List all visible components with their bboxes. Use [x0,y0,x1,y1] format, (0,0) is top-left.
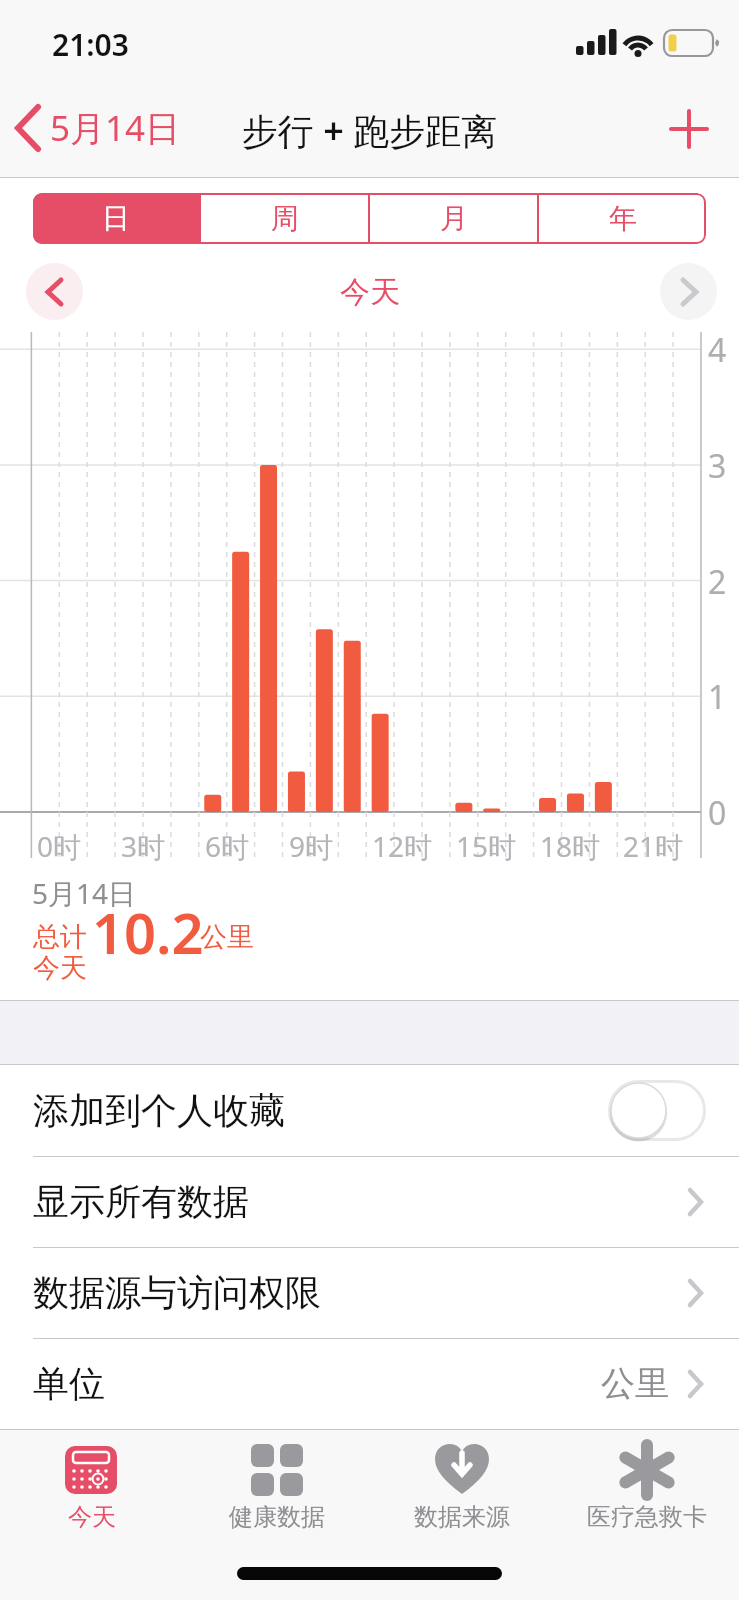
button[interactable]: 健康数据 [207,1444,347,1570]
button[interactable]: 显示所有数据 [0,1156,739,1247]
button[interactable]: 今天 [340,273,400,311]
button[interactable]: 数据来源 [392,1444,532,1570]
button[interactable]: 日 [33,193,199,244]
staticText: 15时 [456,827,517,865]
staticText: 数据来源 [414,1502,510,1532]
staticText: 3时 [121,827,166,865]
staticText: 6时 [205,827,250,865]
button[interactable]: 单位 [0,1338,739,1429]
staticText: 9时 [289,827,334,865]
button[interactable]: 数据源与访问权限 [0,1247,739,1338]
button[interactable]: 年 [539,193,706,244]
staticText: 添加到个人收藏 [33,1088,285,1133]
staticText: 0时 [37,827,82,865]
button[interactable]: 添加到个人收藏 [0,1065,739,1156]
staticText: 3 [708,444,727,488]
button[interactable] [26,263,83,320]
staticText: 日 [102,201,130,236]
button[interactable]: 5月14日 [14,100,181,156]
staticText: 21时 [623,827,684,865]
staticText: 显示所有数据 [33,1179,249,1224]
staticText: 今天 [33,951,87,985]
button[interactable]: 医疗急救卡 [577,1444,717,1570]
staticText: 21:03 [52,24,129,65]
button[interactable] [660,263,717,320]
button[interactable]: 月 [370,193,537,244]
staticText: 年 [609,201,637,236]
staticText: 步行 + 跑步距离 [0,106,739,155]
staticText: 5月14日 [50,104,181,152]
staticText: 0 [708,791,727,835]
staticText: 18时 [540,827,601,865]
staticText: 4 [708,328,727,372]
staticText: 总计 [33,920,87,954]
staticText: 健康数据 [229,1502,325,1532]
button[interactable]: 今天 [22,1444,162,1570]
staticText: 月 [440,201,468,236]
staticText: 数据源与访问权限 [33,1270,321,1315]
button[interactable]: 周 [201,193,368,244]
staticText: 周 [271,201,299,236]
button[interactable] [662,102,716,156]
staticText: 5月14日 [32,874,137,912]
staticText: 单位 [33,1361,105,1406]
staticText: 医疗急救卡 [587,1502,707,1532]
staticText: 12时 [372,827,433,865]
staticText: 2 [708,560,727,604]
staticText: 公里 [601,1362,669,1405]
staticText: 10.2 [92,894,204,970]
staticText: 公里 [200,920,254,954]
staticText: 1 [708,675,727,719]
staticText: 今天 [68,1502,116,1532]
